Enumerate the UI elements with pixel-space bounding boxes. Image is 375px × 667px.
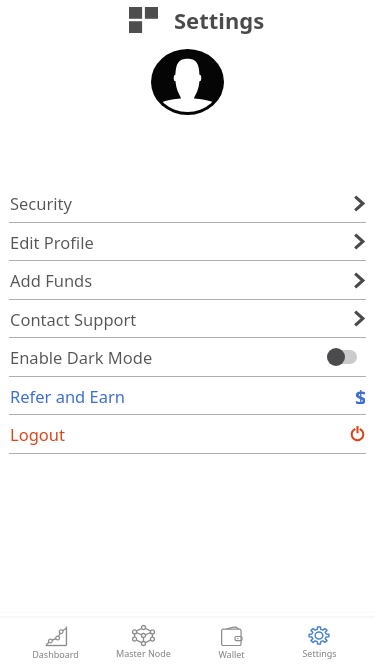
other: Logout bbox=[350, 426, 365, 440]
other: Open bbox=[353, 272, 365, 289]
staticText: Settings bbox=[174, 5, 265, 35]
button[interactable]: Security bbox=[0, 184, 375, 223]
button[interactable]: Settings bbox=[275, 618, 363, 667]
staticText: Contact Support bbox=[10, 308, 137, 330]
other: Settings bbox=[308, 626, 330, 645]
staticText: Master Node bbox=[116, 647, 171, 659]
button[interactable]: Enable Dark Mode bbox=[0, 338, 375, 377]
other: Open bbox=[353, 195, 365, 212]
staticText: Wallet bbox=[218, 648, 245, 660]
staticText: Security bbox=[10, 192, 72, 214]
button[interactable]: Edit Profile bbox=[0, 223, 375, 261]
other: Open bbox=[353, 233, 365, 250]
other: Dashboard bbox=[45, 626, 67, 646]
button[interactable]: Logout bbox=[0, 415, 375, 454]
other: Toggle dark mode bbox=[327, 348, 357, 366]
other: Master Node bbox=[133, 626, 154, 645]
staticText: Add Funds bbox=[10, 269, 93, 291]
button[interactable]: Dashboard bbox=[12, 618, 99, 667]
button[interactable]: Add Funds bbox=[0, 261, 375, 300]
button[interactable]: Master Node bbox=[99, 618, 187, 667]
staticText: Refer and Earn bbox=[10, 385, 125, 407]
staticText: $ bbox=[355, 384, 365, 404]
staticText: Logout bbox=[10, 423, 65, 445]
staticText: Settings bbox=[302, 647, 337, 659]
button[interactable]: Refer and Earn bbox=[0, 377, 375, 415]
other: Open bbox=[353, 310, 365, 327]
staticText: Edit Profile bbox=[10, 231, 94, 253]
button[interactable]: Contact Support bbox=[0, 300, 375, 338]
staticText: Dashboard bbox=[32, 648, 79, 660]
staticText: Enable Dark Mode bbox=[10, 346, 153, 368]
other: Wallet bbox=[221, 626, 242, 646]
button[interactable]: Wallet bbox=[187, 618, 275, 667]
